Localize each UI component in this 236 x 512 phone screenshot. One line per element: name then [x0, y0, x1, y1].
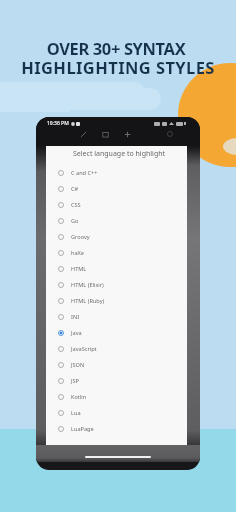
button[interactable]: Lua	[46, 405, 187, 421]
staticText: Groovy	[71, 233, 90, 241]
staticText: LuaPage	[71, 425, 94, 433]
button[interactable]: Kotlin	[46, 389, 187, 405]
button[interactable]: JavaScript	[46, 341, 187, 357]
button[interactable]: Java	[46, 325, 187, 341]
staticText: 10:36 PM	[47, 120, 69, 127]
staticText: JSON	[71, 361, 85, 369]
button[interactable]: haXe	[46, 245, 187, 261]
button[interactable]: Open	[101, 130, 110, 139]
staticText: HTML (Ruby)	[71, 297, 105, 305]
staticText: Java	[71, 329, 82, 337]
button[interactable]: JSON	[46, 357, 187, 373]
button[interactable]: LuaPage	[46, 421, 187, 437]
staticText: Kotlin	[71, 393, 87, 401]
staticText: OVER 30+ SYNTAX	[0, 37, 234, 59]
button[interactable]: C#	[46, 181, 187, 197]
button[interactable]: Search	[166, 130, 175, 139]
staticText: CSS	[71, 201, 81, 209]
button[interactable]: HTML	[46, 261, 187, 277]
button[interactable]: HTML (Elixir)	[46, 277, 187, 293]
staticText: HTML	[71, 265, 87, 273]
staticText: Go	[71, 217, 79, 225]
staticText: JavaScript	[71, 345, 97, 353]
button[interactable]: JSP	[46, 373, 187, 389]
button[interactable]: INI	[46, 309, 187, 325]
button[interactable]: C and C++	[46, 165, 187, 181]
staticText: JSP	[71, 377, 79, 385]
staticText: haXe	[71, 249, 85, 257]
button[interactable]: Add	[123, 130, 132, 139]
staticText: INI	[71, 313, 80, 321]
staticText: C and C++	[71, 169, 98, 177]
staticText: Lua	[71, 409, 81, 417]
staticText: C#	[71, 185, 79, 193]
button[interactable]: CSS	[46, 197, 187, 213]
button[interactable]: HTML (Ruby)	[46, 293, 187, 309]
button[interactable]: Edit	[79, 130, 88, 139]
button[interactable]: Groovy	[46, 229, 187, 245]
staticText: HIGHLIGHTING STYLES	[0, 56, 236, 78]
button[interactable]: Go	[46, 213, 187, 229]
staticText: Select language to highlight	[73, 149, 166, 159]
staticText: HTML (Elixir)	[71, 281, 104, 289]
